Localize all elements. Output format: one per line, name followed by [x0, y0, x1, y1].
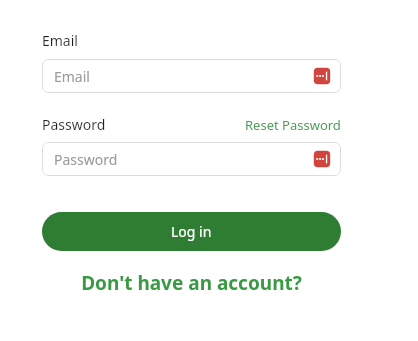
staticText: Email: [42, 31, 78, 50]
button[interactable]: Autofill password: [312, 66, 332, 86]
button[interactable]: Don't have an account?: [42, 270, 341, 296]
button[interactable]: Log in: [42, 212, 341, 251]
staticText: Password: [54, 150, 118, 169]
button[interactable]: Autofill password: [312, 149, 332, 169]
staticText: Password: [42, 115, 106, 134]
button[interactable]: Reset Password: [245, 116, 341, 134]
button[interactable]: Password: [42, 142, 341, 176]
staticText: Email: [54, 67, 90, 86]
button[interactable]: Email: [42, 59, 341, 93]
staticText: Reset Password: [245, 116, 341, 134]
staticText: Don't have an account?: [81, 270, 302, 296]
staticText: Log in: [171, 222, 212, 241]
